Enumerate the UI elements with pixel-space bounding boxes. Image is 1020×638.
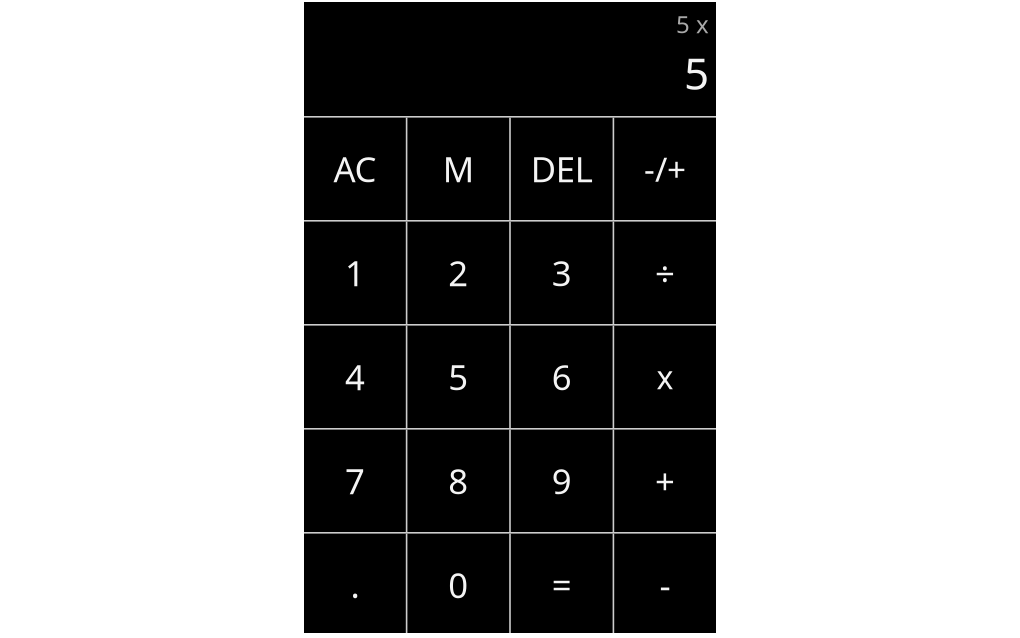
button[interactable]: 2 [407,222,509,324]
button[interactable]: Delete [511,118,613,220]
staticText: . [350,562,359,608]
button[interactable]: 7 [304,430,406,532]
button[interactable]: Divide [614,222,716,324]
staticText: -/+ [644,147,686,191]
staticText: 5 x [676,8,709,40]
button[interactable]: 3 [511,222,613,324]
button[interactable]: All clear [304,118,406,220]
staticText: 3 [552,250,572,296]
button[interactable]: 9 [511,430,613,532]
staticText: 1 [345,250,365,296]
staticText: DEL [531,146,593,192]
button[interactable]: 8 [407,430,509,532]
staticText: x [657,356,674,398]
button[interactable]: 6 [511,326,613,428]
staticText: AC [333,146,376,192]
staticText: 6 [552,354,572,400]
button[interactable]: Memory [407,118,509,220]
staticText: 2 [448,250,468,296]
staticText: 8 [448,458,468,504]
button[interactable]: 5 [407,326,509,428]
staticText: 5 [448,354,468,400]
button[interactable]: Add [614,430,716,532]
staticText: 4 [345,354,365,400]
button[interactable]: Decimal point [304,534,406,636]
staticText: = [552,562,572,608]
button[interactable]: 0 [407,534,509,636]
staticText: 9 [552,458,572,504]
staticText: 7 [345,458,365,504]
staticText: M [443,146,474,192]
staticText: - [660,562,671,608]
staticText: ÷ [655,250,675,296]
button[interactable]: 1 [304,222,406,324]
button[interactable]: Toggle sign [614,118,716,220]
button[interactable]: Multiply [614,326,716,428]
staticText: + [655,458,675,504]
button[interactable]: 4 [304,326,406,428]
button[interactable]: Subtract [614,534,716,636]
staticText: 5 [684,44,709,102]
staticText: 0 [448,562,468,608]
button[interactable]: Equals [511,534,613,636]
